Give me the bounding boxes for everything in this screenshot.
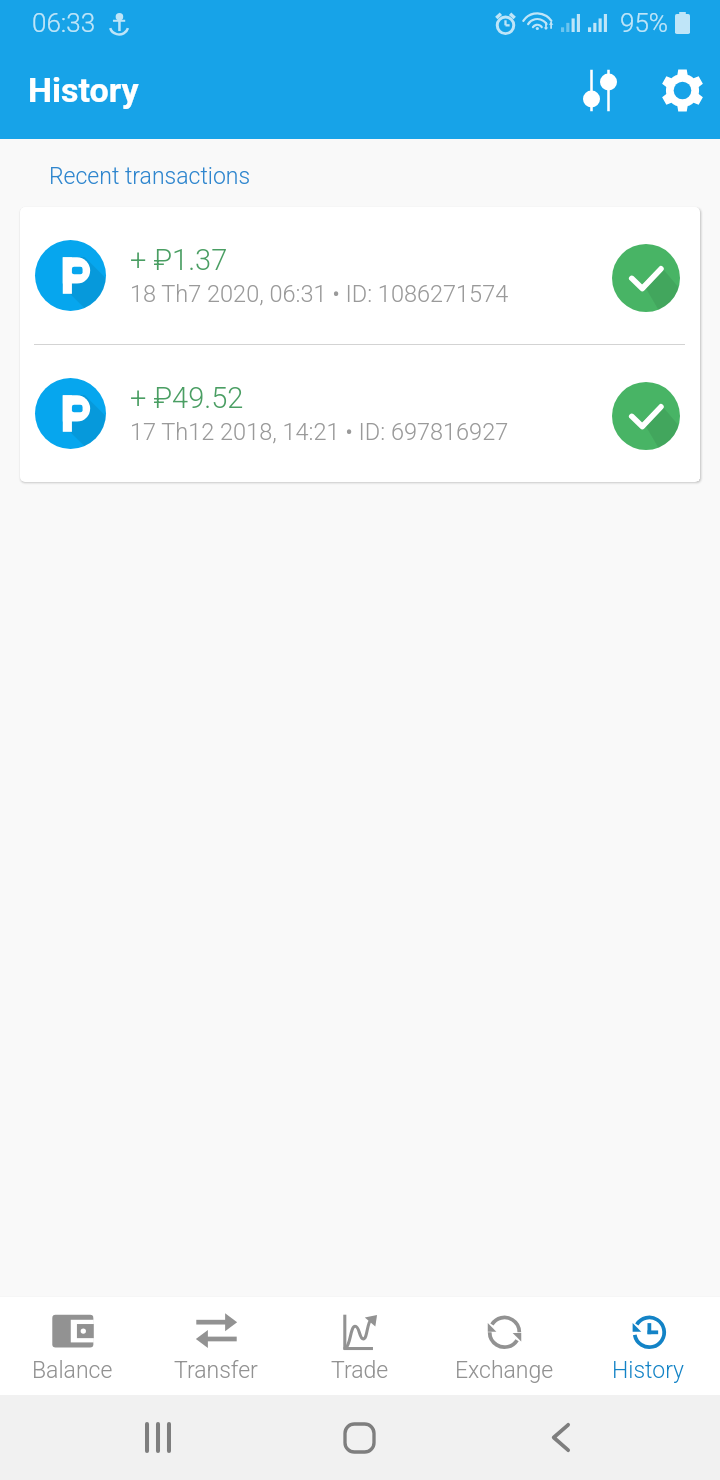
button[interactable]: Exchange <box>432 1297 576 1395</box>
button[interactable]: History <box>576 1297 720 1395</box>
staticText: Balance <box>32 1357 113 1384</box>
button[interactable]: Trade <box>288 1297 432 1395</box>
button[interactable]: Back <box>518 1395 603 1480</box>
staticText: Trade <box>331 1357 389 1384</box>
button[interactable]: + ₽1.37 <box>20 207 700 344</box>
staticText: + ₽1.37 <box>130 243 228 277</box>
staticText: 06:33 <box>32 8 96 38</box>
button[interactable]: Transfer <box>144 1297 288 1395</box>
button[interactable]: + ₽49.52 <box>20 345 700 482</box>
button[interactable]: Home <box>317 1395 402 1480</box>
staticText: 18 Th7 2020, 06:31 • ID: 1086271574 <box>130 280 509 308</box>
button[interactable]: Recents <box>115 1395 200 1480</box>
staticText: Recent transactions <box>49 163 251 190</box>
staticText: History <box>612 1357 685 1384</box>
button[interactable]: Balance <box>0 1297 144 1395</box>
staticText: + ₽49.52 <box>130 381 244 415</box>
staticText: Exchange <box>455 1357 554 1384</box>
staticText: 95% <box>620 8 669 38</box>
button[interactable]: Filter <box>559 49 641 131</box>
staticText: History <box>28 70 139 110</box>
staticText: Transfer <box>174 1357 258 1384</box>
staticText: 17 Th12 2018, 14:21 • ID: 697816927 <box>130 418 509 446</box>
button[interactable]: Settings <box>641 49 720 131</box>
